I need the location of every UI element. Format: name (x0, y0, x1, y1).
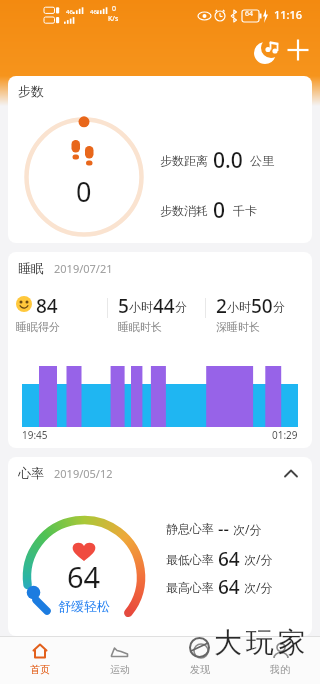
staticText: 步数 (18, 83, 44, 99)
staticText: 2019/07/21 (54, 261, 113, 276)
staticText: 小时 (227, 299, 251, 314)
button[interactable] (252, 36, 282, 66)
staticText: 运动 (110, 663, 130, 676)
staticText: 0.0 (213, 146, 243, 175)
staticText: -- (218, 517, 229, 540)
staticText: 01:29 (272, 428, 298, 442)
staticText: 千卡 (233, 203, 257, 218)
button[interactable]: 睡眠 (8, 252, 312, 448)
staticText: 睡眠得分 (16, 320, 60, 334)
staticText: 心率 (18, 465, 44, 481)
staticText: 0 (76, 173, 92, 210)
staticText: 64 (245, 9, 254, 19)
button[interactable]: 我的 (248, 637, 312, 684)
staticText: 46° (90, 8, 100, 16)
staticText: 步数距离 (160, 153, 208, 168)
staticText: 睡眠时长 (118, 320, 162, 334)
button[interactable] (286, 38, 310, 62)
staticText: 64 (67, 557, 101, 593)
staticText: 11:16 (274, 7, 303, 22)
staticText: 次/分 (244, 579, 273, 595)
staticText: 小时 (129, 299, 153, 314)
button[interactable]: 运动 (88, 637, 152, 684)
button[interactable]: 心率 (8, 457, 312, 636)
staticText: 19:45 (22, 428, 48, 442)
staticText: 睡眠 (18, 260, 44, 276)
staticText: 分 (175, 299, 187, 314)
button[interactable]: 首页 (8, 637, 72, 684)
button[interactable]: 发现 (168, 637, 232, 684)
staticText: 2 (216, 293, 227, 319)
staticText: 0 (112, 4, 117, 14)
staticText: 44 (153, 293, 175, 319)
staticText: 84 (36, 293, 58, 319)
staticText: 2019/05/12 (54, 466, 113, 481)
staticText: 发现 (190, 663, 210, 676)
staticText: 最低心率 (166, 552, 214, 567)
staticText: 0 (213, 196, 226, 225)
button[interactable]: 步数 (8, 76, 312, 243)
staticText: 最高心率 (166, 580, 214, 595)
staticText: 首页 (30, 663, 50, 676)
staticText: K/s (108, 14, 119, 24)
staticText: 舒缓轻松 (58, 598, 110, 614)
staticText: 50 (251, 293, 273, 319)
staticText: 公里 (250, 153, 274, 168)
staticText: 64 (218, 546, 240, 572)
staticText: 5 (118, 293, 129, 319)
staticText: 大玩家 (212, 625, 308, 660)
staticText: 静息心率 (166, 521, 214, 536)
staticText: 我的 (270, 663, 290, 676)
staticText: 深睡时长 (216, 320, 260, 334)
staticText: 步数消耗 (160, 203, 208, 218)
staticText: 次/分 (244, 551, 273, 567)
staticText: 次/分 (233, 521, 262, 537)
staticText: 46 (66, 8, 73, 16)
staticText: 64 (218, 574, 240, 600)
staticText: 分 (273, 299, 285, 314)
button[interactable] (284, 469, 298, 478)
